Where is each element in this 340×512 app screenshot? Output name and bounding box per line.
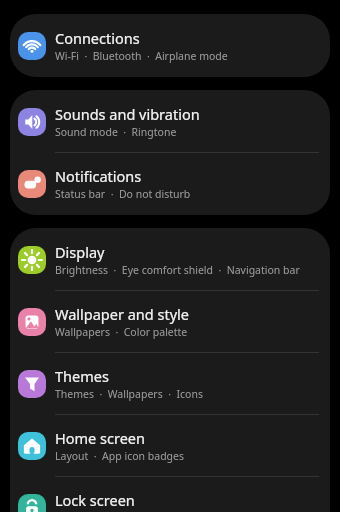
staticText: Themes [55,366,109,386]
staticText: Wallpapers · Color palette [55,325,188,339]
other: Connections [18,32,46,60]
button[interactable]: Home screen [10,415,330,476]
staticText: Layout · App icon badges [55,449,185,463]
staticText: Home screen [55,428,145,448]
other: Home screen [18,432,46,460]
staticText: Sound mode · Ringtone [55,125,177,139]
staticText: Wallpaper and style [55,304,189,324]
staticText: Connections [55,28,140,48]
button[interactable]: Sounds and vibration [10,91,330,152]
staticText: Themes · Wallpapers · Icons [55,387,203,401]
other: Notifications [18,170,46,198]
other: Sounds and vibration [18,108,46,136]
other: Wallpaper and style [18,308,46,336]
button[interactable]: Themes [10,353,330,414]
button[interactable]: Connections [10,15,330,76]
staticText: Brightness · Eye comfort shield · Naviga… [55,263,300,277]
staticText: Lock screen [55,490,135,510]
button[interactable]: Notifications [10,153,330,214]
staticText: Wi-Fi · Bluetooth · Airplane mode [55,49,228,63]
other: Themes [18,370,46,398]
other: Lock screen [18,494,46,512]
staticText: Display [55,242,105,262]
staticText: Status bar · Do not disturb [55,187,191,201]
button[interactable]: Wallpaper and style [10,291,330,352]
other: Display [18,246,46,274]
staticText: Sounds and vibration [55,104,200,124]
button[interactable]: Lock screen [10,477,330,512]
staticText: Notifications [55,166,142,186]
button[interactable]: Display [10,229,330,290]
